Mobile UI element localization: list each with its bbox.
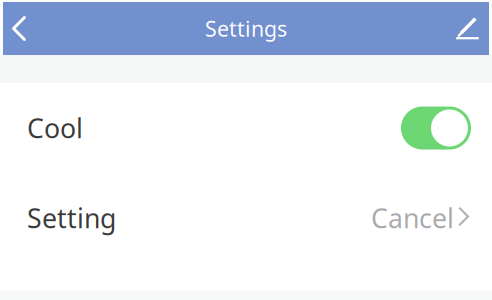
staticText: Cool <box>27 110 83 146</box>
staticText: Cancel <box>371 200 454 236</box>
button[interactable]: Back <box>3 2 65 55</box>
staticText: Settings <box>205 14 287 43</box>
staticText: Setting <box>27 200 116 236</box>
button[interactable]: Compose <box>427 2 489 55</box>
button[interactable]: Setting <box>0 173 492 263</box>
button[interactable]: Cool <box>0 83 492 173</box>
